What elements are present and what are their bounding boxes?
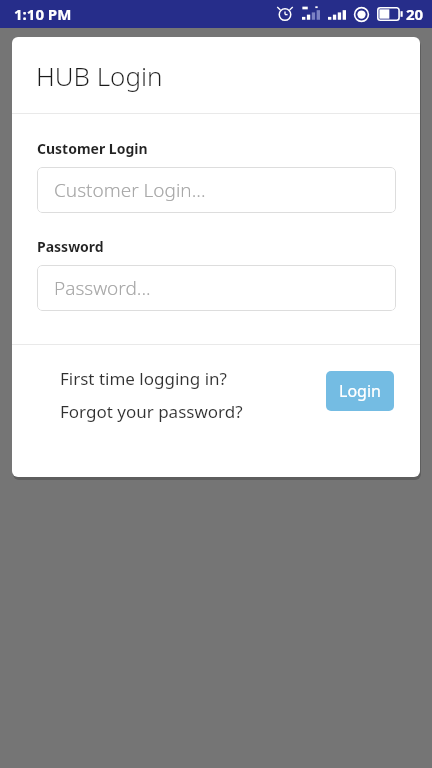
staticText: Customer Login bbox=[37, 139, 148, 158]
button[interactable]: Password... bbox=[37, 265, 396, 311]
button[interactable]: Forgot your password? bbox=[60, 400, 243, 423]
button[interactable]: Customer Login... bbox=[37, 167, 396, 213]
staticText: HUB Login bbox=[36, 58, 163, 93]
staticText: 1:10 PM bbox=[14, 4, 72, 24]
staticText: Password... bbox=[54, 275, 151, 301]
button[interactable]: First time logging in? bbox=[60, 367, 227, 390]
staticText: Login bbox=[339, 380, 381, 402]
button[interactable]: Login bbox=[326, 371, 394, 411]
staticText: Password bbox=[37, 237, 104, 256]
staticText: Customer Login... bbox=[54, 177, 206, 203]
staticText: 20 bbox=[406, 4, 424, 24]
